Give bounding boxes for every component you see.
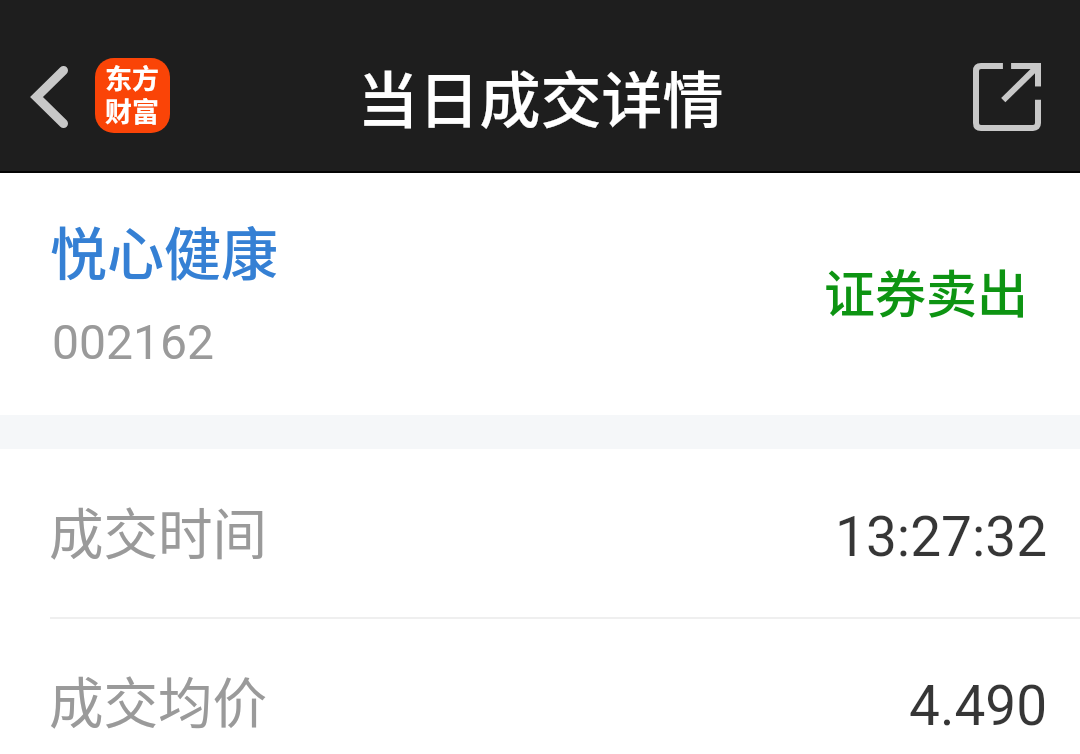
staticText: 002162 xyxy=(52,314,214,370)
staticText: 13:27:32 xyxy=(835,505,1048,569)
button[interactable]: East Money home xyxy=(95,58,170,133)
staticText: 证券卖出 xyxy=(824,254,1029,328)
staticText: 4.490 xyxy=(909,674,1048,738)
staticText: 成交时间 xyxy=(49,491,268,570)
staticText: 成交均价 xyxy=(49,660,268,739)
button[interactable]: 成交时间 xyxy=(0,449,1080,618)
staticText: 悦心健康 xyxy=(50,209,278,292)
button[interactable]: 成交均价 xyxy=(0,618,1080,754)
staticText: 东方 xyxy=(105,58,159,97)
staticText: 财富 xyxy=(105,91,159,130)
staticText: 当日成交详情 xyxy=(357,52,724,140)
button[interactable]: Back xyxy=(14,61,86,133)
button[interactable]: Open in browser xyxy=(966,56,1048,138)
button[interactable]: 悦心健康 xyxy=(0,173,1080,415)
